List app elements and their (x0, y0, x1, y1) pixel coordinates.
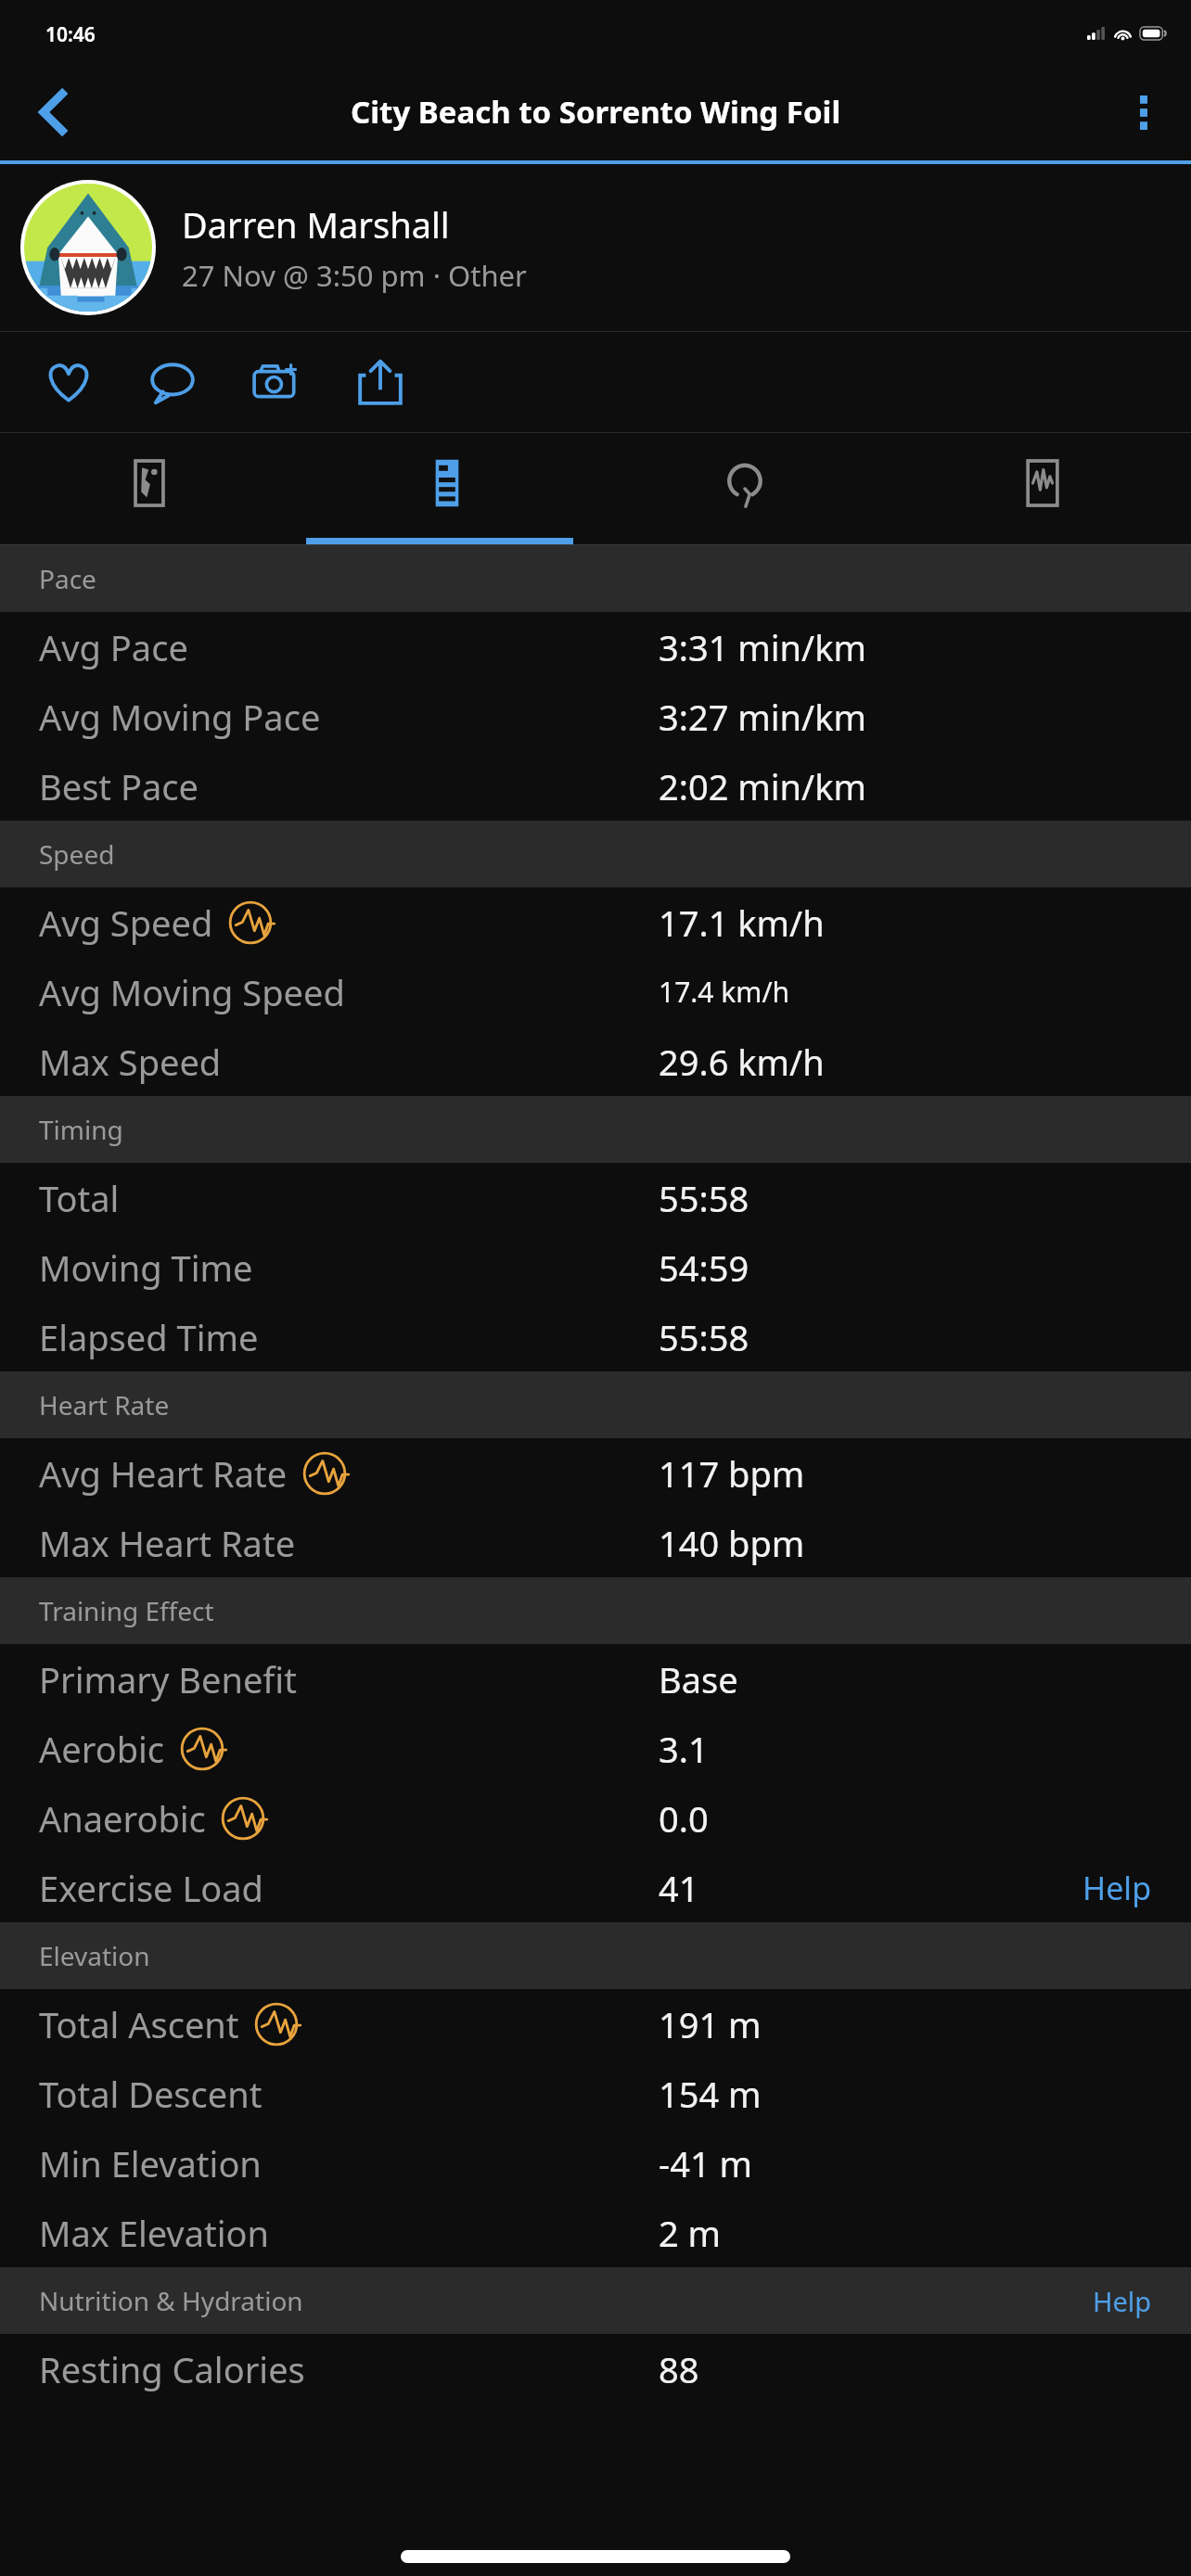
staticText: 10:46 (45, 21, 96, 48)
button[interactable]: Graphs (893, 433, 1191, 544)
button[interactable]: Share (345, 347, 416, 417)
staticText: 41 (659, 1864, 699, 1912)
button[interactable]: Max Elevation (0, 2198, 1191, 2267)
staticText: 55:58 (659, 1313, 749, 1361)
staticText: Avg Moving Pace (39, 693, 321, 741)
staticText: 3:31 min/km (659, 623, 867, 671)
button[interactable]: Help (1044, 1857, 1191, 1919)
button[interactable]: Back (24, 83, 82, 141)
staticText: 55:58 (659, 1174, 749, 1222)
button[interactable]: More options (1115, 83, 1172, 141)
staticText: 2:02 min/km (659, 762, 867, 810)
button[interactable]: Help (1054, 2274, 1191, 2328)
staticText: Moving Time (39, 1243, 253, 1292)
staticText: 191 m (659, 2000, 762, 2048)
staticText: Timing (39, 1112, 123, 1147)
staticText: 3:27 min/km (659, 693, 867, 741)
button[interactable]: Total Ascent (0, 1989, 1191, 2059)
staticText: Total (39, 1174, 120, 1222)
staticText: Anaerobic (39, 1794, 206, 1843)
staticText: Max Speed (39, 1038, 222, 1086)
staticText: Heart Rate (39, 1387, 170, 1422)
staticText: Min Elevation (39, 2139, 262, 2187)
staticText: -41 m (659, 2139, 753, 2187)
button[interactable]: Total Descent (0, 2059, 1191, 2128)
staticText: 27 Nov @ 3:50 pm · Other (182, 256, 527, 295)
staticText: 88 (659, 2345, 699, 2393)
button[interactable]: Max Speed (0, 1027, 1191, 1096)
staticText: 29.6 km/h (659, 1038, 825, 1086)
staticText: Help (1082, 1867, 1152, 1909)
staticText: 154 m (659, 2070, 762, 2118)
button[interactable]: Map (0, 433, 298, 544)
button[interactable]: Aerobic (0, 1714, 1191, 1783)
staticText: Nutrition & Hydration (39, 2283, 303, 2318)
staticText: Darren Marshall (182, 200, 450, 249)
staticText: 17.4 km/h (659, 973, 790, 1011)
staticText: Avg Moving Speed (39, 968, 345, 1016)
button[interactable]: Anaerobic (0, 1783, 1191, 1853)
staticText: Elapsed Time (39, 1313, 259, 1361)
staticText: Avg Pace (39, 623, 188, 671)
staticText: Exercise Load (39, 1864, 263, 1912)
button[interactable]: Max Heart Rate (0, 1508, 1191, 1577)
staticText: City Beach to Sorrento Wing Foil (351, 91, 841, 133)
button[interactable]: Exercise Load (0, 1853, 1191, 1922)
button[interactable]: Avg Speed (0, 887, 1191, 957)
button[interactable]: Laps (595, 433, 893, 544)
staticText: 17.1 km/h (659, 899, 825, 947)
button[interactable]: Elapsed Time (0, 1302, 1191, 1371)
button[interactable]: Darren Marshall (0, 164, 1191, 331)
staticText: Pace (39, 561, 96, 596)
staticText: 140 bpm (659, 1519, 805, 1567)
staticText: 2 m (659, 2209, 722, 2257)
staticText: Max Elevation (39, 2209, 269, 2257)
button[interactable]: Avg Heart Rate (0, 1438, 1191, 1508)
staticText: Speed (39, 836, 115, 872)
button[interactable]: Add photo (241, 347, 312, 417)
staticText: Elevation (39, 1938, 150, 1973)
staticText: Aerobic (39, 1725, 165, 1773)
staticText: 117 bpm (659, 1449, 805, 1498)
staticText: Avg Speed (39, 899, 213, 947)
button[interactable]: Min Elevation (0, 2128, 1191, 2198)
staticText: Avg Heart Rate (39, 1449, 288, 1498)
staticText: 54:59 (659, 1243, 749, 1292)
button[interactable]: Avg Moving Pace (0, 682, 1191, 751)
button[interactable]: Avg Pace (0, 612, 1191, 682)
staticText: Resting Calories (39, 2345, 305, 2393)
button[interactable]: Resting Calories (0, 2334, 1191, 2404)
button[interactable]: Primary Benefit (0, 1644, 1191, 1714)
staticText: Total Descent (39, 2070, 263, 2118)
staticText: 0.0 (659, 1794, 709, 1843)
button[interactable]: Best Pace (0, 751, 1191, 821)
staticText: Max Heart Rate (39, 1519, 296, 1567)
staticText: Best Pace (39, 762, 198, 810)
button[interactable]: Details (298, 433, 595, 544)
staticText: Help (1093, 2283, 1152, 2319)
button[interactable]: Like (33, 347, 104, 417)
staticText: 3.1 (659, 1725, 709, 1773)
staticText: Total Ascent (39, 2000, 239, 2048)
button[interactable]: Moving Time (0, 1232, 1191, 1302)
button[interactable]: Comment (137, 347, 208, 417)
staticText: Base (659, 1655, 738, 1703)
staticText: Primary Benefit (39, 1655, 297, 1703)
staticText: Training Effect (39, 1593, 214, 1628)
button[interactable]: Avg Moving Speed (0, 957, 1191, 1027)
button[interactable]: Total (0, 1163, 1191, 1232)
